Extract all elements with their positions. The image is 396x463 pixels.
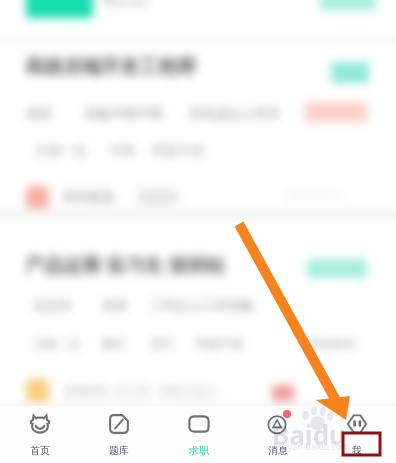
staticText: 高级后端开发工程师 [25, 55, 196, 79]
staticText: Baidu [272, 417, 346, 452]
staticText: 本科 [102, 297, 128, 313]
staticText: 题库 [109, 444, 129, 457]
staticText: 深圳某某 [63, 188, 115, 204]
button[interactable]: 高级后端开发工程师 [0, 43, 396, 211]
staticText: 我 [352, 444, 362, 457]
staticText: 三年以上工作经验 [150, 297, 254, 313]
staticText: 前程无忧 [104, 0, 148, 10]
button[interactable]: 消息 [238, 406, 317, 463]
staticText: 产品运营 实习生 深圳站 [25, 252, 225, 278]
staticText: 北京市 [33, 297, 72, 313]
staticText: 五险一金 [33, 336, 81, 351]
staticText: 某某科技 · 已上市 · 2000人以上 [64, 383, 217, 398]
staticText: 本科及以上学历 [189, 105, 280, 121]
staticText: 带薪年假 [152, 142, 204, 158]
button[interactable]: 我 [317, 406, 396, 463]
staticText: 房补 [150, 336, 174, 351]
button[interactable]: 产品运营 实习生 深圳站 [0, 219, 396, 405]
button[interactable]: 题库 [79, 406, 158, 463]
staticText: 消息 [268, 444, 288, 457]
staticText: 经验不限不限 [85, 105, 163, 121]
staticText: 周末双休 [308, 336, 356, 351]
staticText: 首页 [30, 444, 50, 457]
staticText: 求职 [189, 444, 209, 457]
staticText: 带薪年假 [195, 336, 243, 351]
button[interactable]: 前程无忧 [0, 0, 396, 37]
staticText: 餐补 [102, 336, 126, 351]
staticText: 五险一金 [35, 142, 87, 158]
button[interactable]: 首页 [0, 406, 79, 463]
button[interactable]: 求职 [159, 406, 238, 463]
staticText: 深圳 [26, 105, 52, 121]
staticText: jingyan.baidu.com [272, 440, 350, 452]
staticText: 年终 [110, 142, 136, 158]
